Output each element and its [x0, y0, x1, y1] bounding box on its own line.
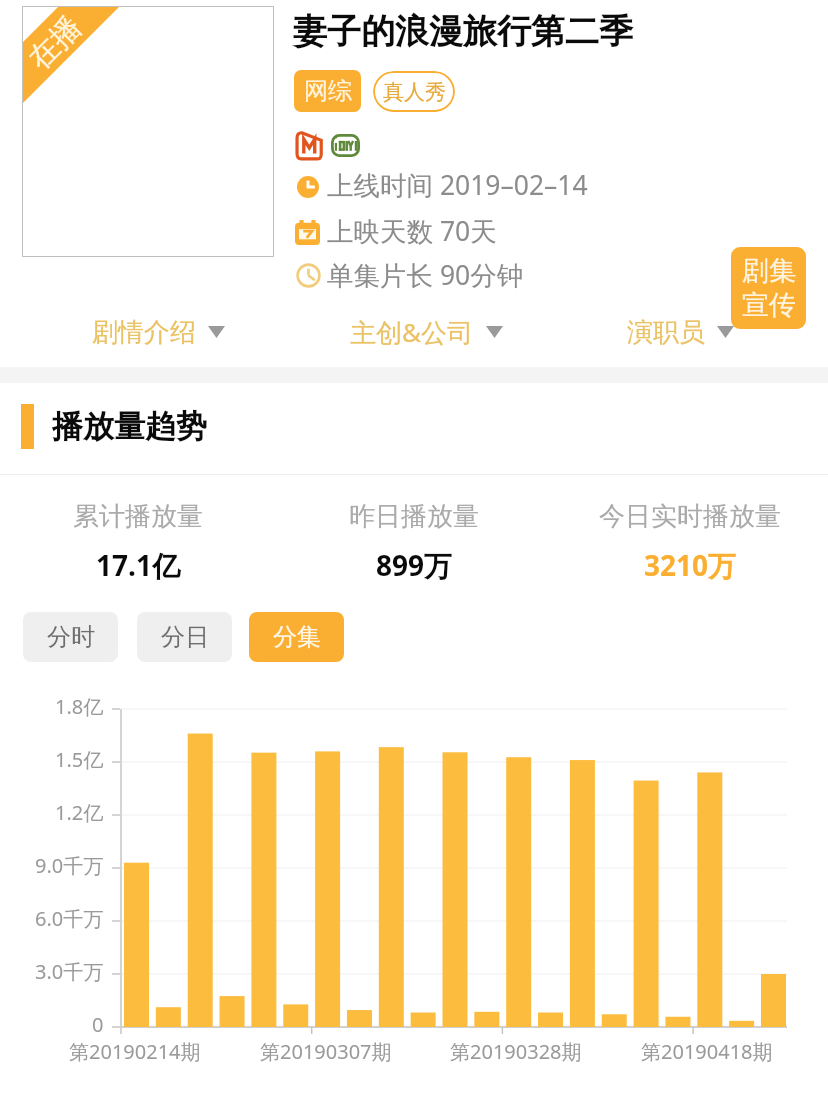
staticText: 3210万: [644, 546, 737, 584]
button[interactable]: 累计播放量: [0, 500, 276, 584]
staticText: 上映天数 70天: [327, 213, 497, 249]
button[interactable]: 爱奇艺: [331, 134, 360, 157]
staticText: 1.8亿: [55, 693, 104, 720]
staticText: 网综: [304, 76, 352, 106]
staticText: 上线时间 2019–02–14: [327, 167, 588, 203]
staticText: 剧情介绍: [92, 316, 196, 349]
staticText: 累计播放量: [73, 500, 203, 533]
staticText: 第20190307期: [260, 1038, 392, 1065]
staticText: 演职员: [627, 316, 705, 349]
staticText: 分时: [47, 622, 95, 652]
staticText: 6.0千万: [35, 905, 104, 932]
staticText: 主创&公司: [350, 314, 474, 350]
staticText: 899万: [376, 546, 453, 584]
staticText: 1.2亿: [55, 799, 104, 826]
button[interactable]: 剧情介绍: [92, 309, 225, 355]
staticText: 3.0千万: [35, 958, 104, 985]
staticText: 1.5亿: [55, 746, 104, 773]
staticText: 剧集 宣传: [742, 254, 796, 322]
staticText: 今日实时播放量: [599, 500, 781, 533]
staticText: 第20190418期: [641, 1038, 773, 1065]
button[interactable]: 剧集 宣传: [731, 247, 806, 329]
button[interactable]: 海报: [22, 6, 274, 257]
staticText: 第20190328期: [450, 1038, 582, 1065]
staticText: 分日: [161, 622, 209, 652]
staticText: 第20190214期: [69, 1038, 201, 1065]
staticText: 昨日播放量: [349, 500, 479, 533]
staticText: 真人秀: [383, 79, 446, 105]
button[interactable]: 昨日播放量: [276, 500, 552, 584]
staticText: 播放量趋势: [52, 407, 207, 446]
button[interactable]: 分时: [23, 612, 118, 662]
button[interactable]: 演职员: [627, 309, 734, 355]
button[interactable]: 真人秀: [373, 71, 455, 112]
staticText: 0: [92, 1011, 104, 1038]
button[interactable]: 分集: [249, 612, 344, 662]
staticText: 分集: [273, 622, 321, 652]
button[interactable]: 网综: [294, 70, 361, 112]
button[interactable]: 主创&公司: [350, 309, 503, 355]
button[interactable]: 芒果TV: [296, 131, 322, 160]
staticText: 妻子的浪漫旅行第二季: [293, 10, 633, 53]
staticText: 在播: [20, 8, 90, 78]
staticText: 9.0千万: [35, 852, 104, 879]
staticText: 17.1亿: [96, 546, 180, 584]
button[interactable]: 分日: [137, 612, 232, 662]
button[interactable]: 今日实时播放量: [552, 500, 828, 584]
staticText: 单集片长 90分钟: [327, 257, 524, 293]
